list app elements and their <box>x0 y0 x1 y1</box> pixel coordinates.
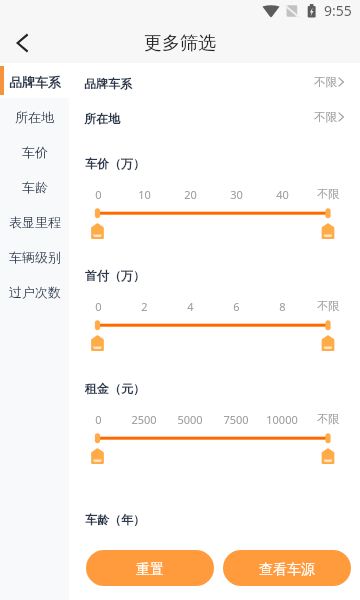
staticText: 车龄 <box>22 179 48 195</box>
button[interactable]: 所在地 <box>69 101 360 136</box>
staticText: 30 <box>230 187 243 202</box>
staticText: 查看车源 <box>259 561 315 579</box>
staticText: 车价（万） <box>85 156 145 171</box>
button[interactable]: 过户次数 <box>0 273 69 308</box>
staticText: 10000 <box>266 412 298 427</box>
staticText: 租金（元） <box>85 381 145 396</box>
staticText: 0 <box>95 412 102 427</box>
staticText: 所在地 <box>84 111 120 126</box>
staticText: 不限 <box>317 187 339 201</box>
staticText: 4 <box>187 299 194 314</box>
staticText: 0 <box>95 187 102 202</box>
staticText: 首付（万） <box>85 268 145 283</box>
staticText: 所在地 <box>15 109 54 125</box>
staticText: 更多筛选 <box>144 32 216 55</box>
staticText: 不限 <box>317 412 339 426</box>
button[interactable]: 品牌车系 <box>69 66 360 101</box>
staticText: 10 <box>138 187 151 202</box>
staticText: 2500 <box>131 412 157 427</box>
button[interactable]: 车价 <box>0 133 69 168</box>
staticText: 表显里程 <box>9 214 61 230</box>
button[interactable]: 车辆级别 <box>0 238 69 273</box>
staticText: 40 <box>276 187 289 202</box>
button[interactable]: 车龄 <box>0 168 69 203</box>
staticText: 5000 <box>177 412 203 427</box>
staticText: 不限 <box>317 299 339 313</box>
button[interactable]: 品牌车系 <box>0 63 69 98</box>
staticText: 车价 <box>22 144 48 160</box>
staticText: 8 <box>279 299 286 314</box>
staticText: 不限 <box>314 75 337 89</box>
staticText: 20 <box>184 187 197 202</box>
button[interactable]: 所在地 <box>0 98 69 133</box>
button[interactable]: 表显里程 <box>0 203 69 238</box>
staticText: 重置 <box>136 561 164 579</box>
staticText: 6 <box>233 299 240 314</box>
staticText: 7500 <box>223 412 249 427</box>
staticText: 9:55 <box>324 1 352 20</box>
staticText: 0 <box>95 299 102 314</box>
staticText: 品牌车系 <box>84 76 132 91</box>
staticText: 车龄（年） <box>85 512 145 527</box>
staticText: 2 <box>141 299 148 314</box>
button[interactable]: Back <box>6 27 38 59</box>
staticText: 过户次数 <box>9 284 61 300</box>
button[interactable]: 查看车源 <box>223 550 351 586</box>
button[interactable]: 重置 <box>86 550 214 586</box>
staticText: 品牌车系 <box>9 74 61 90</box>
staticText: 不限 <box>314 110 337 124</box>
staticText: 车辆级别 <box>9 249 61 265</box>
